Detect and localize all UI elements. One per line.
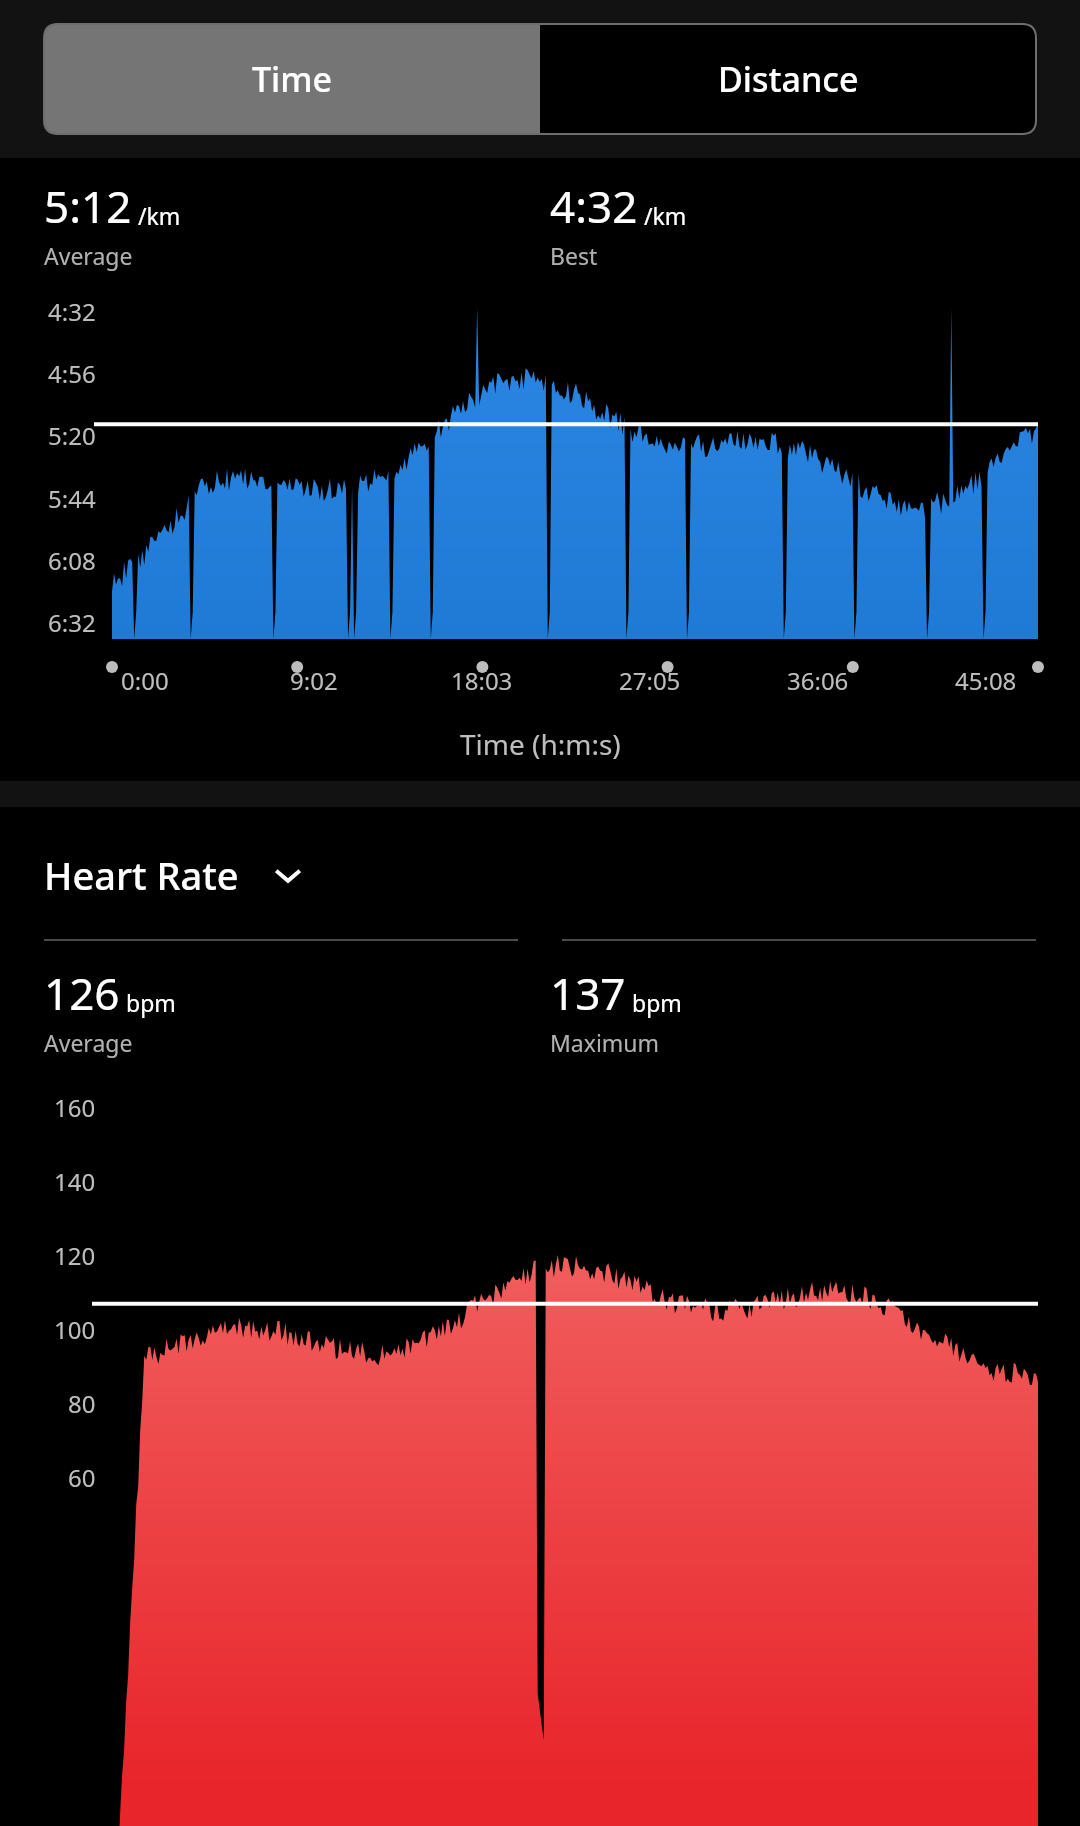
staticText: Distance <box>718 56 859 102</box>
button[interactable]: Distance <box>540 24 1036 134</box>
staticText: bpm <box>126 987 176 1018</box>
staticText: 4:32 <box>48 295 96 328</box>
staticText: 4:56 <box>48 357 96 390</box>
staticText: 140 <box>54 1165 96 1198</box>
staticText: Heart Rate <box>44 849 239 901</box>
staticText: /km <box>138 200 181 231</box>
staticText: 4:32 <box>550 176 638 236</box>
staticText: 5:44 <box>48 482 96 515</box>
staticText: Average <box>44 240 133 271</box>
staticText: bpm <box>632 987 682 1018</box>
staticText: Maximum <box>550 1027 660 1058</box>
staticText: /km <box>644 200 687 231</box>
staticText: 18:03 <box>451 664 513 697</box>
button[interactable]: Heart Rate <box>44 849 1080 901</box>
staticText: 0:00 <box>121 664 169 697</box>
staticText: 126 <box>44 963 120 1023</box>
staticText: 45:08 <box>955 664 1017 697</box>
other: Expand heart rate <box>267 854 309 896</box>
staticText: 120 <box>54 1239 96 1272</box>
staticText: Time (h:m:s) <box>460 725 621 763</box>
staticText: 36:06 <box>787 664 849 697</box>
staticText: Time <box>252 56 333 102</box>
staticText: 6:08 <box>48 544 96 577</box>
staticText: 137 <box>550 963 626 1023</box>
staticText: 9:02 <box>290 664 338 697</box>
staticText: 80 <box>68 1387 96 1420</box>
staticText: 5:20 <box>48 419 96 452</box>
staticText: Average <box>44 1027 133 1058</box>
staticText: 160 <box>54 1091 96 1124</box>
staticText: 27:05 <box>619 664 681 697</box>
staticText: 5:12 <box>44 176 132 236</box>
button[interactable]: Time <box>44 24 540 134</box>
staticText: Best <box>550 240 598 271</box>
staticText: 60 <box>68 1461 96 1494</box>
staticText: 100 <box>54 1313 96 1346</box>
staticText: 6:32 <box>48 606 96 639</box>
